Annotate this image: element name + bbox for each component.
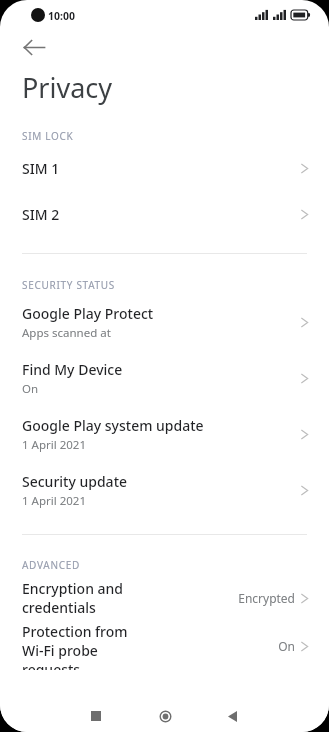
button[interactable]: Google Play Protect [0,294,329,350]
staticText: Find My Device [22,360,123,379]
staticText: Encryption and credentials [22,579,130,617]
staticText: Google Play system update [22,416,204,435]
button[interactable]: Recents [78,700,114,732]
staticText: SIM 1 [22,159,300,178]
button[interactable]: Back [14,30,54,65]
button[interactable]: Back [214,700,250,732]
button[interactable]: Find My Device [0,350,329,406]
staticText: Encrypted [238,590,295,606]
staticText: 1 April 2021 [22,437,86,453]
staticText: SIM 2 [22,205,300,224]
staticText: On [22,381,39,397]
button[interactable]: Encryption and credentials [0,574,329,622]
staticText: SIM LOCK [22,129,74,143]
staticText: SECURITY STATUS [22,278,116,292]
button[interactable]: SIM 1 [0,145,329,191]
button[interactable]: Protection from Wi-Fi probe requests [0,622,329,670]
staticText: 1 April 2021 [22,493,86,509]
button[interactable]: Security update [0,462,329,518]
staticText: Security update [22,472,128,491]
staticText: On [278,638,295,654]
staticText: 10:00 [48,9,75,23]
button[interactable]: SIM 2 [0,191,329,237]
staticText: Google Play Protect [22,304,154,323]
staticText: ADVANCED [22,558,80,572]
staticText: Protection from Wi-Fi probe requests [22,622,150,670]
button[interactable]: Google Play system update [0,406,329,462]
button[interactable]: Home [147,700,183,732]
staticText: Apps scanned at [22,325,111,341]
staticText: Privacy [22,69,113,106]
